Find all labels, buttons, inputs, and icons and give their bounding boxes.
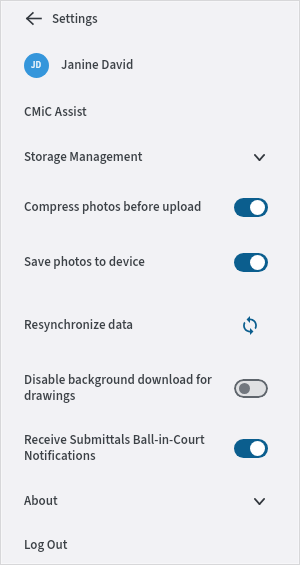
button[interactable]: Receive Submittals Ball-in-Court Notific… (0, 430, 300, 466)
staticText: Log Out (24, 536, 68, 555)
button[interactable]: CMiC Assist (0, 94, 300, 130)
other: Resynchronize data (243, 316, 257, 335)
button[interactable]: JD (0, 48, 300, 82)
button[interactable]: Back (0, 0, 58, 36)
button[interactable]: Compress photos before upload (0, 189, 300, 225)
button[interactable]: Resynchronize data (0, 307, 300, 343)
staticText: About (24, 492, 254, 511)
staticText: Disable background download for drawings (24, 371, 224, 405)
button[interactable]: Storage Management (0, 139, 300, 175)
button[interactable]: Disable background download for drawings (0, 370, 300, 406)
staticText: Janine David (61, 56, 134, 75)
staticText: Resynchronize data (24, 316, 243, 335)
button[interactable]: About (0, 483, 300, 519)
button[interactable]: Save photos to device (0, 244, 300, 280)
button[interactable]: Log Out (0, 527, 300, 563)
staticText: JD (31, 59, 42, 72)
staticText: Save photos to device (24, 253, 224, 272)
staticText: Settings (52, 10, 98, 29)
staticText: Receive Submittals Ball-in-Court Notific… (24, 431, 224, 465)
staticText: CMiC Assist (24, 103, 87, 122)
staticText: Storage Management (24, 148, 254, 167)
staticText: Compress photos before upload (24, 198, 224, 217)
